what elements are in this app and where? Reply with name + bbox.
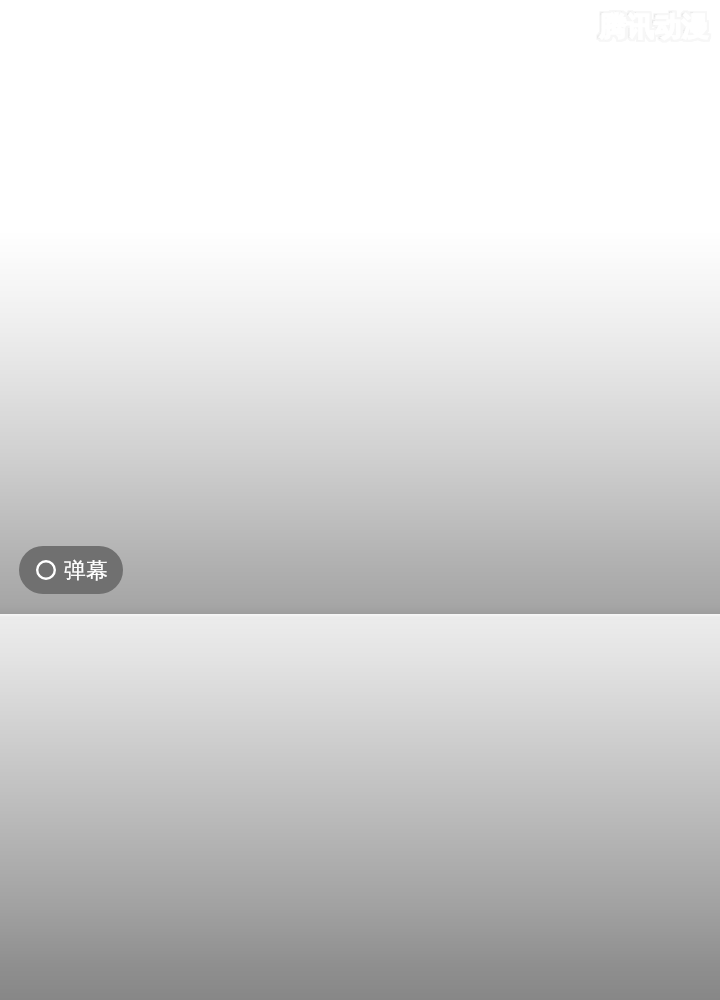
staticText: 弹幕: [64, 557, 108, 585]
staticText: 腾讯动漫: [599, 10, 709, 44]
staticText: 腾讯动漫: [600, 11, 710, 45]
staticText: 腾讯动漫: [598, 12, 708, 46]
staticText: 腾讯动漫: [597, 12, 707, 46]
staticText: 腾讯动漫: [600, 8, 710, 42]
staticText: 腾讯动漫: [597, 10, 707, 44]
staticText: 腾讯动漫: [601, 9, 711, 43]
staticText: 腾讯动漫: [599, 9, 709, 43]
staticText: 腾讯动漫: [599, 8, 709, 42]
staticText: 腾讯动漫: [600, 10, 710, 44]
staticText: 腾讯动漫: [599, 11, 709, 45]
staticText: 腾讯动漫: [601, 12, 711, 46]
staticText: 腾讯动漫: [598, 11, 708, 45]
staticText: 腾讯动漫: [598, 9, 708, 43]
staticText: 腾讯动漫: [600, 12, 710, 46]
staticText: 腾讯动漫: [598, 8, 708, 42]
staticText: 腾讯动漫: [601, 11, 711, 45]
staticText: 腾讯动漫: [597, 9, 707, 43]
staticText: 腾讯动漫: [600, 9, 710, 43]
other: Danmaku off: [36, 560, 56, 580]
staticText: 腾讯动漫: [597, 11, 707, 45]
staticText: 腾讯动漫: [601, 10, 711, 44]
staticText: 腾讯动漫: [599, 12, 709, 46]
button[interactable]: Danmaku off: [19, 546, 123, 594]
staticText: 腾讯动漫: [597, 8, 707, 42]
staticText: 腾讯动漫: [598, 10, 708, 44]
staticText: 腾讯动漫: [601, 8, 711, 42]
